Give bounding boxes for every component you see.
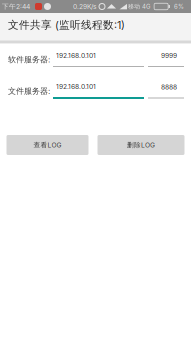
staticText: 0.29K/s (73, 2, 97, 11)
staticText: 9999 (161, 51, 177, 60)
button[interactable]: 删除LOG (97, 135, 184, 155)
staticText: 查看LOG (33, 141, 61, 149)
staticText: 下午2:44 (2, 2, 30, 11)
staticText: 移动 (128, 3, 140, 10)
staticText: 192.168.0.101 (56, 51, 96, 60)
button[interactable]: 查看LOG (6, 135, 88, 155)
staticText: 6% (174, 3, 184, 10)
staticText: 软件服务器: (8, 54, 50, 65)
staticText: 文件共享 (监听线程数:1) (8, 18, 125, 32)
staticText: 删除LOG (127, 141, 155, 149)
staticText: 8888 (161, 83, 177, 91)
staticText: 192.168.0.101 (56, 82, 96, 91)
staticText: 文件服务器: (8, 86, 50, 96)
staticText: 4G (142, 3, 150, 10)
